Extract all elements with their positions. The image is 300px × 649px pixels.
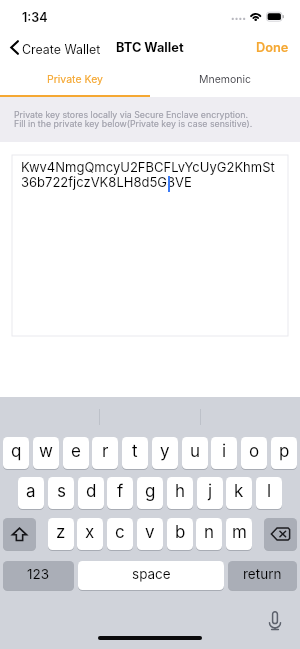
button[interactable]: z — [48, 518, 74, 550]
staticText: 123 — [27, 566, 50, 582]
staticText: Private Key — [47, 73, 103, 86]
button[interactable]: a — [18, 477, 44, 509]
staticText: b — [175, 522, 186, 543]
button[interactable]: i — [211, 437, 237, 469]
staticText: w — [39, 441, 53, 462]
button[interactable]: j — [197, 477, 223, 509]
staticText: t — [132, 441, 138, 462]
button[interactable]: e — [63, 437, 89, 469]
button[interactable]: q — [3, 437, 29, 469]
staticText: space — [132, 566, 171, 582]
staticText: m — [232, 522, 247, 543]
button[interactable]: b — [167, 518, 193, 550]
button[interactable]: c — [107, 518, 133, 550]
staticText: o — [249, 441, 260, 462]
button[interactable]: f — [107, 477, 133, 509]
button[interactable]: Backspace — [264, 518, 297, 550]
staticText: r — [102, 441, 109, 462]
staticText: h — [175, 481, 186, 502]
button[interactable]: o — [241, 437, 267, 469]
staticText: BTC Wallet — [116, 40, 184, 55]
button[interactable]: t — [122, 437, 148, 469]
staticText: v — [145, 522, 155, 543]
staticText: x — [85, 522, 95, 543]
staticText: z — [56, 522, 66, 543]
staticText: g — [145, 481, 156, 502]
staticText: n — [204, 522, 215, 543]
button[interactable]: Done — [245, 35, 300, 60]
staticText: i — [222, 441, 227, 462]
staticText: Create Wallet — [22, 42, 101, 57]
button[interactable]: Kwv4NmgQmcyU2FBCFLvYcUyG2KhmSt36b722fjcz… — [12, 155, 288, 336]
button[interactable]: k — [226, 477, 252, 509]
button[interactable]: Private Key — [0, 62, 150, 97]
button[interactable]: v — [137, 518, 163, 550]
button[interactable]: return — [228, 561, 297, 590]
button[interactable]: x — [77, 518, 103, 550]
button[interactable]: Dictation — [261, 606, 289, 634]
staticText: j — [208, 481, 213, 502]
button[interactable]: p — [271, 437, 297, 469]
button[interactable]: 123 — [3, 561, 74, 590]
button[interactable]: y — [152, 437, 178, 469]
button[interactable]: w — [33, 437, 59, 469]
button[interactable]: space — [78, 561, 224, 590]
staticText: u — [190, 441, 201, 462]
staticText: s — [57, 481, 66, 502]
staticText: q — [11, 441, 22, 462]
button[interactable]: l — [256, 477, 282, 509]
button[interactable]: Mnemonic — [150, 62, 300, 97]
button[interactable]: d — [78, 477, 104, 509]
staticText: c — [115, 522, 125, 543]
staticText: return — [243, 566, 282, 582]
staticText: Mnemonic — [199, 73, 252, 86]
button[interactable]: Shift — [3, 518, 36, 550]
staticText: 1:34 — [22, 10, 48, 25]
button[interactable]: u — [182, 437, 208, 469]
button[interactable]: Create Wallet — [0, 36, 111, 59]
staticText: p — [279, 441, 290, 462]
staticText: l — [267, 481, 272, 502]
button[interactable]: s — [48, 477, 74, 509]
staticText: y — [160, 441, 170, 462]
staticText: Kwv4NmgQmcyU2FBCFLvYcUyG2KhmSt36b722fjcz… — [21, 159, 280, 190]
button[interactable]: n — [196, 518, 222, 550]
button[interactable]: g — [137, 477, 163, 509]
staticText: e — [71, 441, 81, 462]
staticText: Private key stores locally via Secure En… — [14, 109, 253, 129]
staticText: f — [117, 481, 124, 502]
button[interactable]: m — [226, 518, 252, 550]
staticText: d — [86, 481, 97, 502]
button[interactable]: r — [92, 437, 118, 469]
staticText: k — [234, 481, 244, 502]
button[interactable]: h — [167, 477, 193, 509]
staticText: a — [26, 481, 36, 502]
